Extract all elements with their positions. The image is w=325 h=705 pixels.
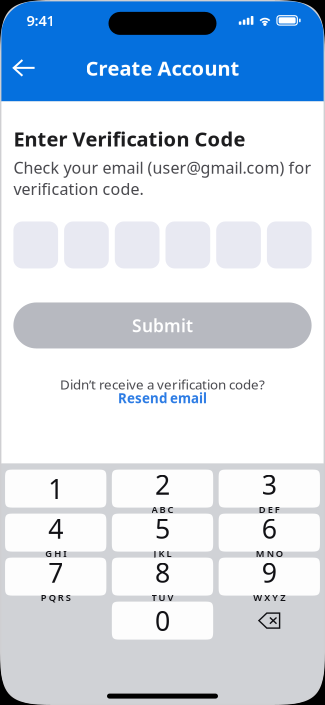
staticText: 3: [262, 467, 277, 502]
staticText: 9: [262, 555, 277, 590]
button[interactable]: 5: [112, 514, 213, 552]
button[interactable]: Resend email: [118, 389, 207, 407]
staticText: A B C: [151, 503, 173, 515]
staticText: Resend email: [118, 389, 207, 407]
staticText: 9:41: [26, 11, 54, 30]
staticText: M N O: [256, 547, 283, 559]
staticText: Create Account: [85, 55, 239, 81]
staticText: P Q R S: [41, 591, 71, 603]
button[interactable]: 9: [219, 558, 320, 596]
staticText: 5: [155, 511, 170, 546]
staticText: 4: [48, 511, 63, 546]
button[interactable]: 2: [112, 470, 213, 508]
staticText: 0: [155, 603, 170, 638]
button[interactable]: 8: [112, 558, 213, 596]
button[interactable]: 1: [5, 470, 106, 508]
staticText: D E F: [259, 503, 280, 515]
staticText: Submit: [132, 314, 193, 337]
button[interactable]: 6: [219, 514, 320, 552]
staticText: T U V: [151, 591, 173, 603]
staticText: 2: [155, 467, 170, 502]
button[interactable]: Delete: [219, 602, 320, 640]
button[interactable]: Submit: [13, 302, 312, 348]
button[interactable]: 3: [219, 470, 320, 508]
button[interactable]: Back: [1, 46, 51, 90]
staticText: 8: [155, 555, 170, 590]
button[interactable]: 4: [5, 514, 106, 552]
button[interactable]: 7: [5, 558, 106, 596]
staticText: J K L: [153, 547, 171, 559]
staticText: Didn’t receive a verification code?: [60, 375, 265, 393]
staticText: G H I: [45, 547, 66, 559]
staticText: W X Y Z: [253, 591, 285, 603]
staticText: 6: [262, 511, 277, 546]
staticText: 7: [48, 555, 63, 590]
button[interactable]: 0: [112, 602, 213, 640]
staticText: Check your email (user@gmail.com) for ve…: [13, 157, 311, 199]
staticText: Enter Verification Code: [13, 125, 245, 152]
staticText: 1: [48, 471, 63, 506]
